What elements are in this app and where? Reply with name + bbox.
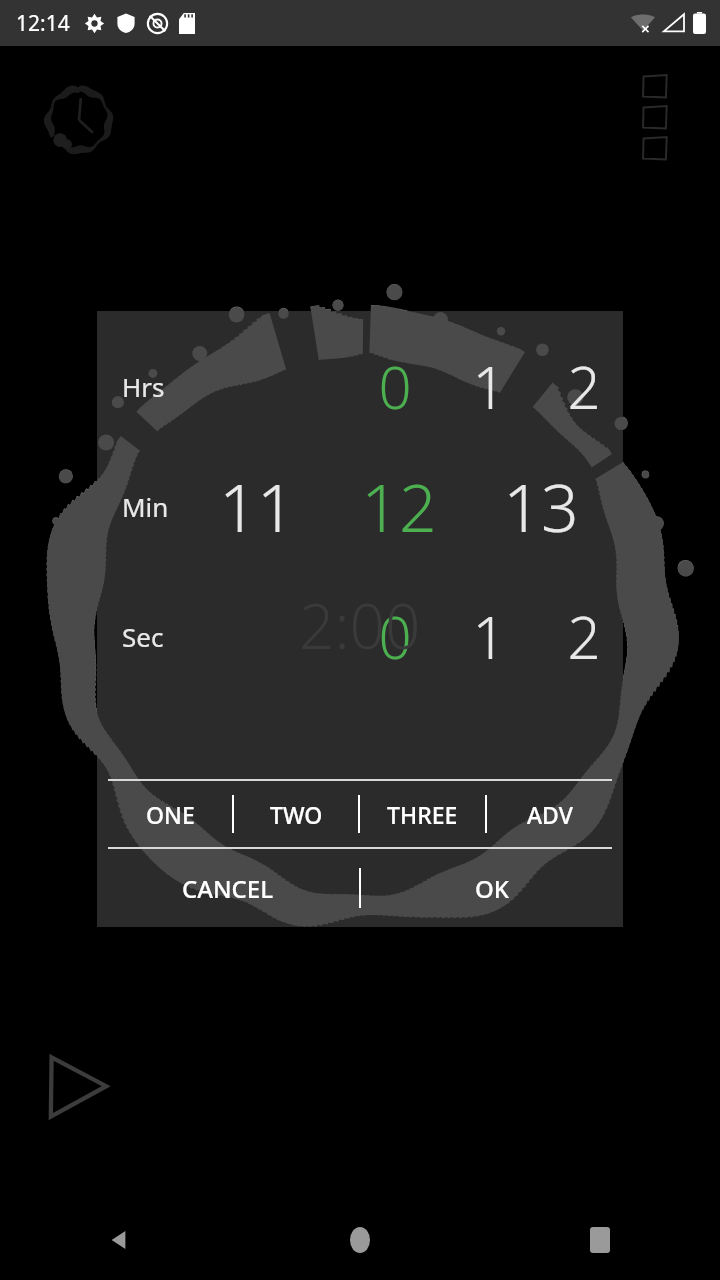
staticText: Min <box>122 489 169 524</box>
button[interactable]: OK <box>361 849 623 927</box>
staticText: CANCEL <box>182 872 274 905</box>
button[interactable]: 11 <box>197 441 317 571</box>
button[interactable]: TWO <box>234 781 358 847</box>
button[interactable]: 12 <box>339 441 459 571</box>
button[interactable]: CANCEL <box>97 849 359 927</box>
staticText: ADV <box>527 799 573 830</box>
staticText: Hrs <box>122 369 165 404</box>
button[interactable]: 2 <box>524 571 644 701</box>
button[interactable]: Start <box>36 1048 114 1126</box>
button[interactable]: 13 <box>481 441 601 571</box>
staticText: 11 <box>219 461 295 551</box>
button[interactable]: 1 <box>429 571 549 701</box>
staticText: 0 <box>378 597 412 676</box>
staticText: THREE <box>387 799 458 830</box>
staticText: Sec <box>122 619 164 654</box>
button[interactable]: ONE <box>108 781 232 847</box>
staticText: 0 <box>378 347 412 426</box>
staticText: 12 <box>361 461 437 551</box>
staticText: TWO <box>270 799 323 830</box>
staticText: 2:00 <box>299 583 421 667</box>
staticText: 1 <box>472 597 506 676</box>
button[interactable]: 0 <box>335 571 455 701</box>
staticText: 12:14 <box>16 9 70 38</box>
button[interactable]: THREE <box>360 781 485 847</box>
staticText: OK <box>475 872 509 905</box>
button[interactable]: 0 <box>335 331 455 441</box>
button[interactable]: More options <box>638 70 672 171</box>
button[interactable]: App logo <box>33 74 125 166</box>
staticText: 1 <box>472 347 506 426</box>
staticText: 13 <box>503 461 579 551</box>
button[interactable]: 1 <box>429 331 549 441</box>
button[interactable]: Recent apps <box>480 1200 720 1280</box>
staticText: ONE <box>146 799 195 830</box>
button[interactable]: Back <box>0 1200 240 1280</box>
button[interactable]: Home <box>240 1200 480 1280</box>
staticText: 2 <box>567 597 601 676</box>
button[interactable]: 2 <box>524 331 644 441</box>
staticText: 2 <box>567 347 601 426</box>
button[interactable]: ADV <box>487 781 612 847</box>
